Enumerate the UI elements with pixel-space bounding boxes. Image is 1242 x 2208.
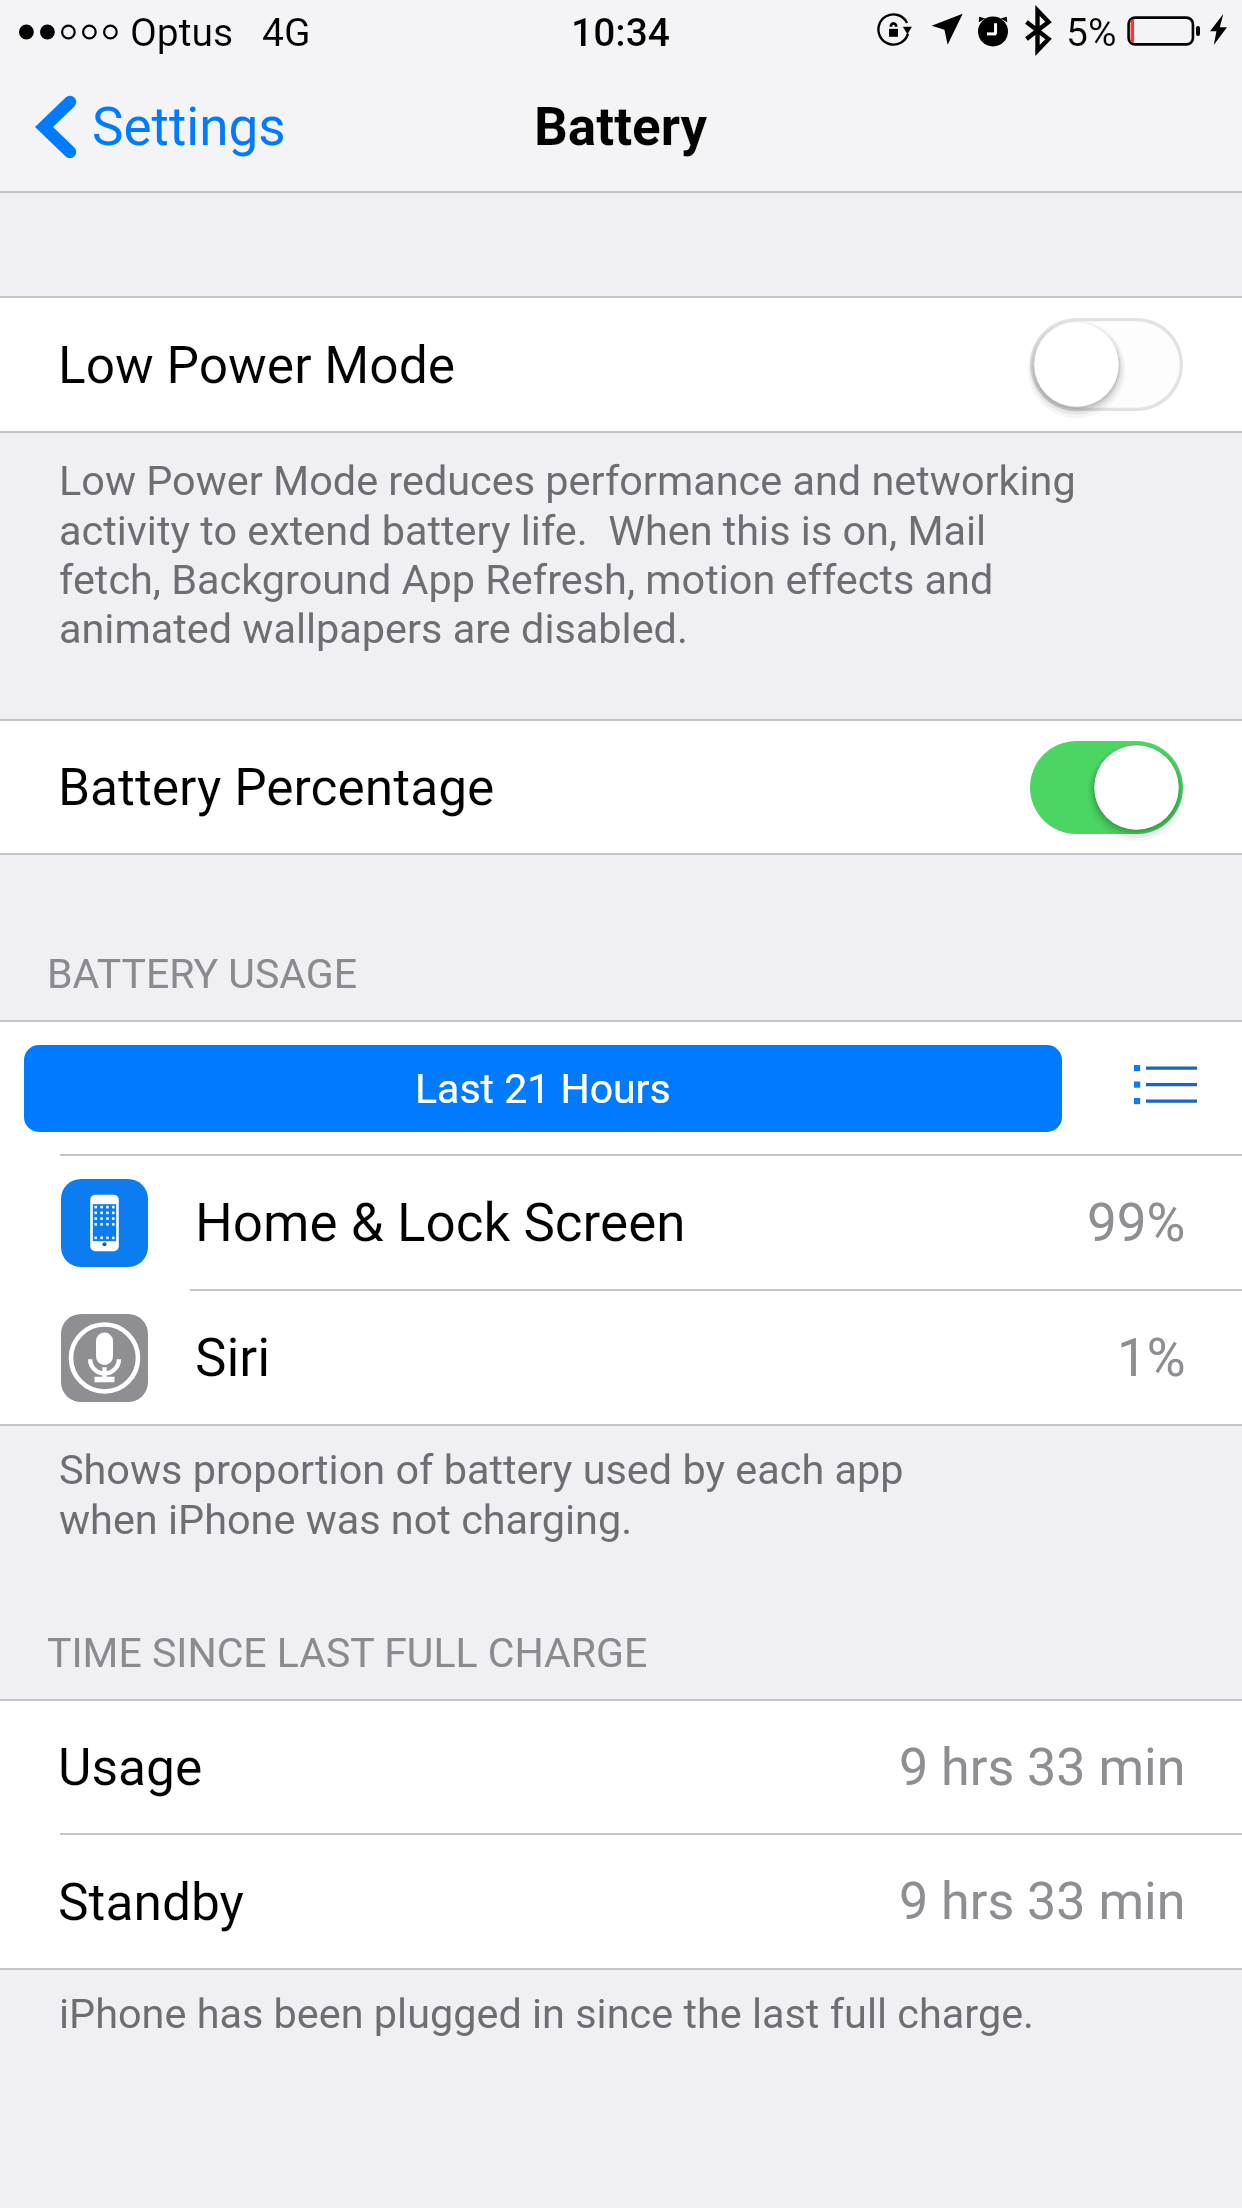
button[interactable]: Low Power Mode toggle, off bbox=[1030, 318, 1183, 411]
staticText: 4G bbox=[262, 10, 311, 56]
staticText: Siri bbox=[195, 1327, 271, 1389]
staticText: Standby bbox=[58, 1872, 244, 1932]
button[interactable]: Last 21 Hours bbox=[0, 1022, 1242, 1154]
staticText: Low Power Mode bbox=[58, 335, 456, 395]
staticText: 9 hrs 33 min bbox=[899, 1737, 1186, 1798]
staticText: 99% bbox=[1087, 1192, 1186, 1254]
button[interactable]: Usage bbox=[0, 1701, 1242, 1833]
button[interactable]: Battery Percentage toggle, on bbox=[1030, 741, 1183, 834]
staticText: 9 hrs 33 min bbox=[899, 1871, 1186, 1932]
staticText: 1% bbox=[1117, 1327, 1186, 1389]
button[interactable]: Siri bbox=[0, 1291, 1242, 1424]
staticText: Low Power Mode reduces performance and n… bbox=[59, 457, 1090, 653]
staticText: Home & Lock Screen bbox=[195, 1192, 686, 1254]
staticText: Shows proportion of battery used by each… bbox=[59, 1446, 904, 1544]
button[interactable]: Low Power Mode bbox=[0, 298, 1242, 431]
staticText: Last 21 Hours bbox=[415, 1065, 671, 1113]
button[interactable]: Settings bbox=[31, 92, 286, 162]
staticText: iPhone has been plugged in since the las… bbox=[59, 1990, 1035, 2039]
button[interactable]: Show usage list bbox=[1062, 1022, 1242, 1154]
staticText: Battery Percentage bbox=[58, 757, 495, 817]
button[interactable]: Battery Percentage bbox=[0, 721, 1242, 853]
staticText: 5% bbox=[1066, 10, 1117, 56]
staticText: Battery bbox=[534, 96, 708, 158]
staticText: Settings bbox=[92, 96, 286, 158]
staticText: Usage bbox=[58, 1737, 203, 1797]
staticText: Optus bbox=[130, 10, 234, 56]
button[interactable]: Last 21 Hours bbox=[24, 1045, 1062, 1132]
button[interactable]: Home & Lock Screen bbox=[0, 1156, 1242, 1289]
button[interactable]: Standby bbox=[0, 1835, 1242, 1968]
staticText: 10:34 bbox=[571, 10, 671, 56]
staticText: TIME SINCE LAST FULL CHARGE bbox=[47, 1629, 648, 1677]
staticText: BATTERY USAGE bbox=[47, 950, 358, 998]
